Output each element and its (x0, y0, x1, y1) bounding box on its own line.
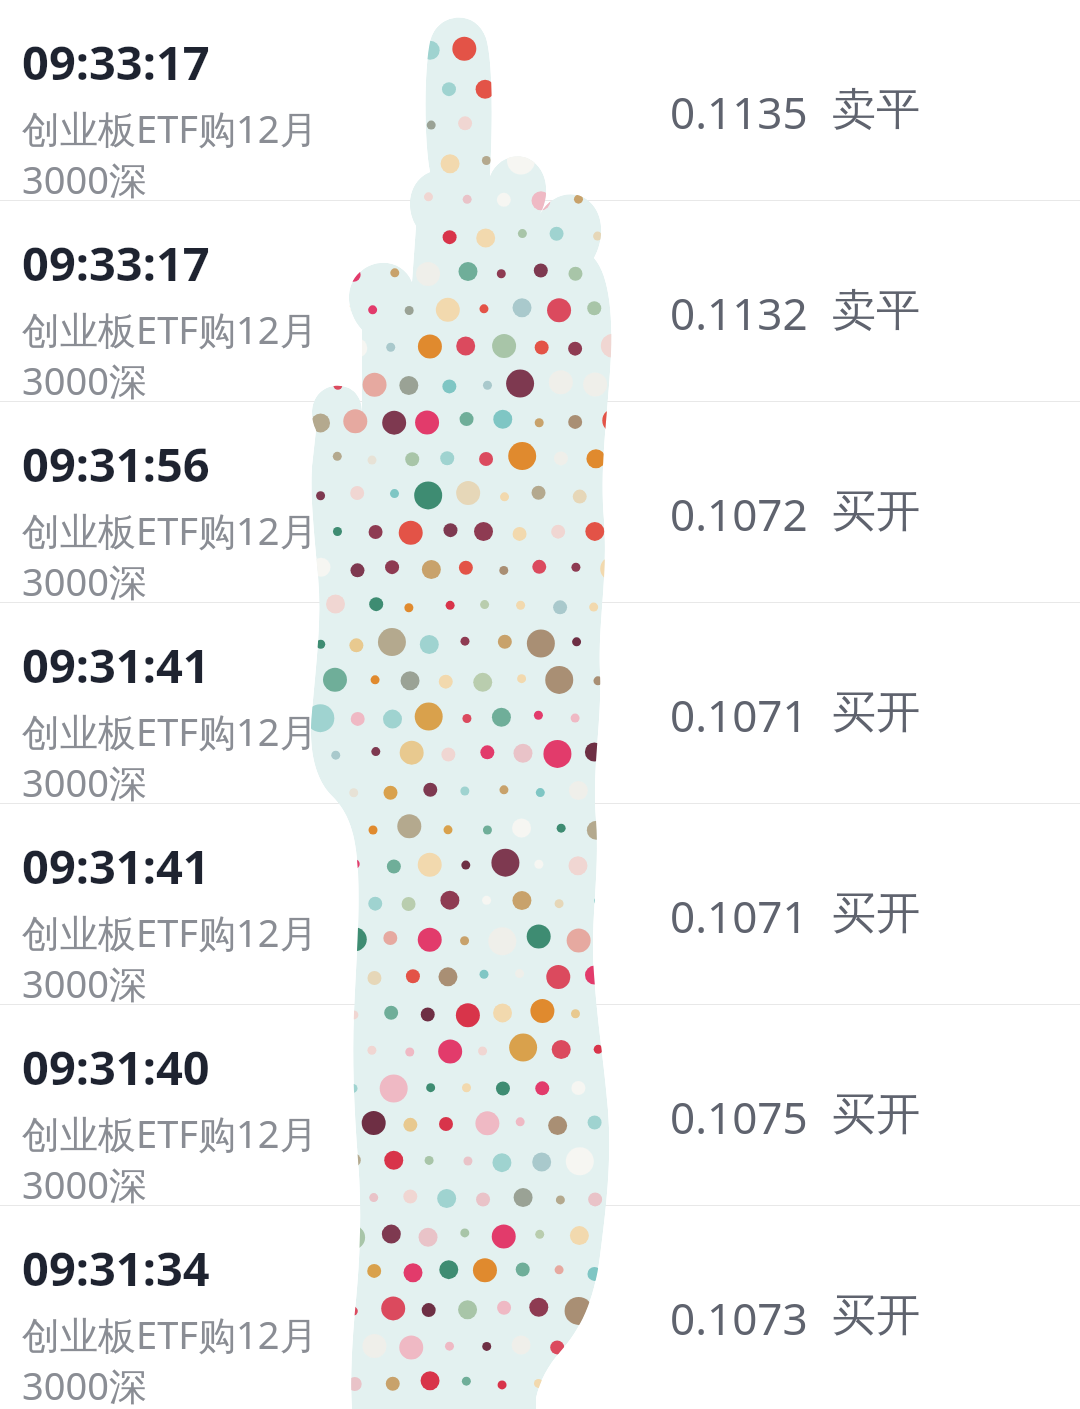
staticText: 0.1075 (670, 1087, 808, 1147)
staticText: 09:33:17 (22, 30, 210, 94)
button[interactable]: 09:33:17 (0, 0, 1080, 200)
staticText: 创业板ETF购12月3000深 (22, 906, 330, 1004)
staticText: 0.1073 (670, 1288, 808, 1348)
staticText: 创业板ETF购12月3000深 (22, 1308, 330, 1406)
staticText: 0.1071 (670, 685, 808, 745)
staticText: 09:31:40 (22, 1035, 210, 1099)
staticText: 09:31:41 (22, 633, 210, 697)
staticText: 09:31:56 (22, 432, 210, 496)
staticText: 买开 (832, 1288, 920, 1343)
staticText: 买开 (832, 484, 920, 539)
staticText: 0.1132 (670, 283, 808, 343)
staticText: 创业板ETF购12月3000深 (22, 303, 330, 401)
staticText: 09:31:41 (22, 834, 210, 898)
staticText: 09:31:34 (22, 1236, 210, 1300)
button[interactable]: 09:31:40 (0, 1005, 1080, 1205)
button[interactable]: 09:31:41 (0, 603, 1080, 803)
staticText: 创业板ETF购12月3000深 (22, 504, 330, 602)
staticText: 买开 (832, 685, 920, 740)
staticText: 创业板ETF购12月3000深 (22, 705, 330, 803)
staticText: 0.1072 (670, 484, 808, 544)
staticText: 卖平 (832, 82, 920, 137)
button[interactable]: 09:33:17 (0, 201, 1080, 401)
staticText: 创业板ETF购12月3000深 (22, 1107, 330, 1205)
staticText: 09:33:17 (22, 231, 210, 295)
staticText: 创业板ETF购12月3000深 (22, 102, 330, 200)
staticText: 0.1135 (670, 82, 808, 142)
button[interactable]: 09:31:56 (0, 402, 1080, 602)
staticText: 买开 (832, 1087, 920, 1142)
staticText: 0.1071 (670, 886, 808, 946)
staticText: 卖平 (832, 283, 920, 338)
button[interactable]: 09:31:34 (0, 1206, 1080, 1406)
staticText: 买开 (832, 886, 920, 941)
button[interactable]: 09:31:41 (0, 804, 1080, 1004)
